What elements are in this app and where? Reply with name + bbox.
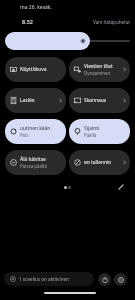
staticText: en tallennin (84, 159, 112, 166)
button[interactable]: Viestien tilat (69, 57, 130, 82)
staticText: Päällä (84, 132, 97, 138)
staticText: Pois (20, 132, 29, 138)
staticText: Viestien tilat (84, 63, 113, 70)
button[interactable]: Älä häiritse (5, 150, 66, 175)
staticText: Älä häiritse (20, 156, 46, 163)
button[interactable]: Virta (98, 273, 111, 286)
button[interactable]: Asetukset (114, 273, 127, 286)
staticText: 1 sovellus on aktiivinen (19, 276, 69, 282)
staticText: Vain hätäpuhelut (93, 19, 130, 25)
button[interactable]: Muokkaa (115, 181, 127, 193)
button[interactable]: Kirkkaus (5, 32, 90, 50)
button[interactable]: Skannaus (69, 88, 130, 113)
button[interactable]: uutinen kään (5, 119, 66, 144)
staticText: Näyttökuva (20, 66, 47, 73)
staticText: uutinen kään (20, 125, 51, 132)
staticText: Skannaus (84, 97, 107, 104)
button[interactable]: Laskin (5, 88, 66, 113)
staticText: Laskin (20, 97, 35, 104)
staticText: 8.52 (22, 18, 33, 25)
staticText: Sijainti (84, 125, 100, 132)
button[interactable]: en tallennin (69, 150, 130, 175)
button[interactable]: 1 sovellus on aktiivinen (4, 272, 94, 286)
button[interactable]: Näyttökuva (5, 57, 66, 82)
button[interactable]: Sijainti (69, 119, 130, 144)
staticText: Dynaaminen (84, 70, 111, 76)
staticText: Poissa päältä (20, 163, 48, 169)
staticText: ma 26. kesäk. (20, 4, 52, 11)
